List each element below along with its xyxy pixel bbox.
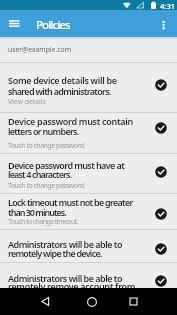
staticText: Device password must contain <box>8 115 133 127</box>
button[interactable] <box>122 291 144 312</box>
button[interactable]: Some device details will be <box>0 62 177 112</box>
staticText: least 4 characters. <box>8 168 72 180</box>
staticText: Administrators will be able to <box>8 272 123 284</box>
button[interactable] <box>81 291 103 312</box>
staticText: Administrators will be able to <box>8 238 123 250</box>
button[interactable] <box>6 17 23 30</box>
staticText: Touch to change password. <box>8 181 85 191</box>
button[interactable]: Device password must have at <box>0 153 177 194</box>
staticText: 4:31 <box>160 1 176 11</box>
staticText: Some device details will be <box>8 74 117 86</box>
staticText: Touch to change timeout. <box>8 217 78 227</box>
button[interactable] <box>34 291 56 312</box>
staticText: Touch to change password. <box>8 141 85 151</box>
staticText: Policies <box>36 17 70 33</box>
button[interactable]: Lock timeout must not be greater <box>0 193 177 229</box>
staticText: remotely wipe the device. <box>8 247 102 259</box>
staticText: user@example.com <box>8 45 71 54</box>
button[interactable]: Administrators will be able to <box>0 262 177 302</box>
staticText: remotely remove account from <box>8 280 136 292</box>
staticText: View details <box>8 97 46 107</box>
staticText: Device password must have at <box>8 159 125 171</box>
staticText: than 30 minutes. <box>8 206 66 218</box>
button[interactable] <box>158 18 172 34</box>
button[interactable]: Device password must contain <box>0 112 177 153</box>
button[interactable]: user@example.com <box>0 37 177 62</box>
staticText: shared with administrators. <box>8 85 111 97</box>
staticText: letters or numbers. <box>8 125 79 137</box>
button[interactable]: Administrators will be able to <box>0 229 177 261</box>
staticText: Lock timeout must not be greater <box>8 196 133 208</box>
